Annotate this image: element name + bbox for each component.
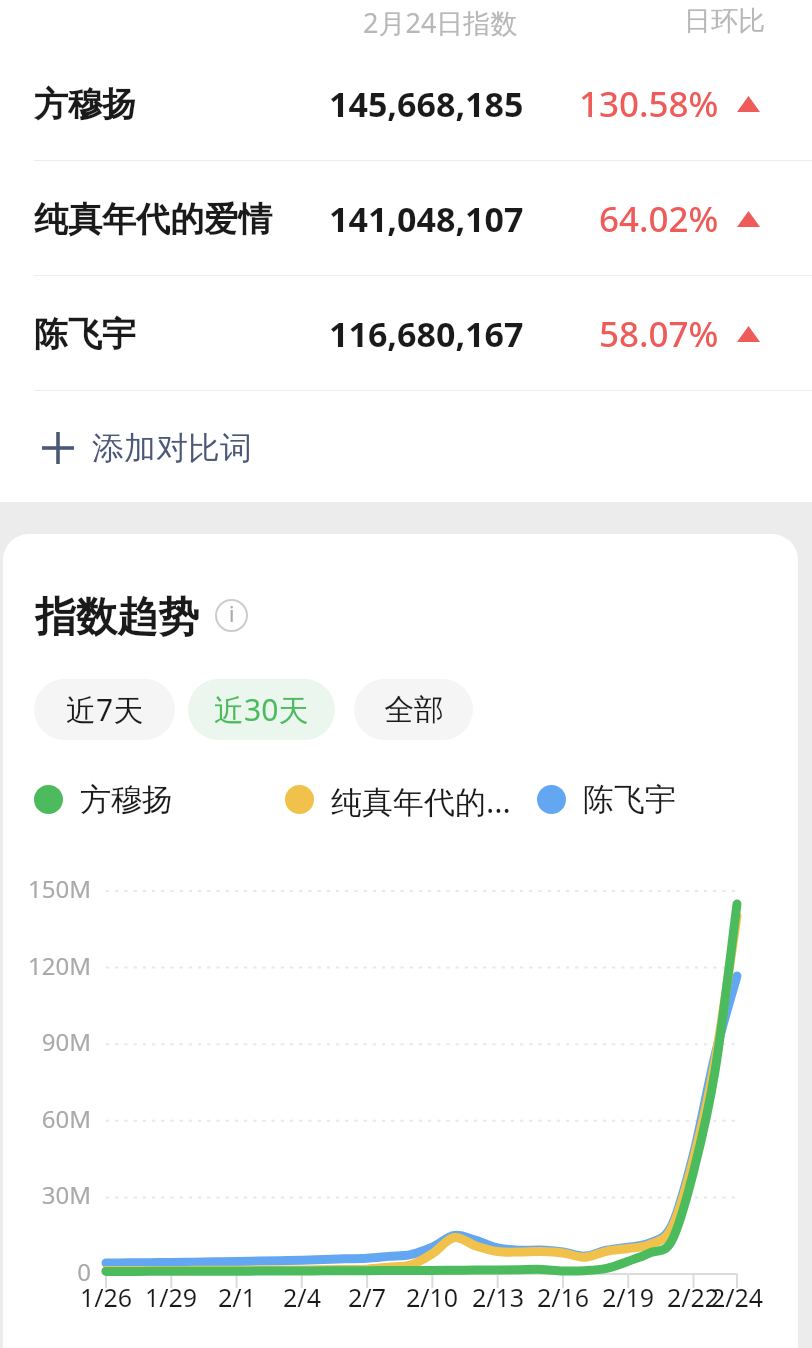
staticText: 141,048,107: [329, 196, 524, 242]
staticText: 添加对比词: [92, 428, 252, 468]
staticText: 58.07%: [599, 310, 719, 358]
staticText: 近30天: [214, 689, 309, 730]
staticText: 日环比: [684, 4, 765, 38]
staticText: 2/13: [453, 1280, 543, 1314]
button[interactable]: 方穆扬: [0, 48, 812, 160]
staticText: 60M: [6, 1102, 91, 1135]
staticText: 130.58%: [579, 80, 719, 128]
staticText: 145,668,185: [329, 81, 524, 127]
button[interactable]: 纯真年代的爱情: [0, 163, 812, 275]
staticText: 全部: [384, 691, 444, 729]
staticText: 30M: [6, 1178, 91, 1211]
staticText: i: [229, 600, 235, 629]
staticText: 1/26: [61, 1280, 151, 1314]
staticText: 方穆扬: [80, 780, 173, 818]
staticText: 方穆扬: [34, 83, 136, 126]
staticText: 纯真年代的爱情: [34, 198, 272, 241]
staticText: 64.02%: [599, 195, 719, 243]
staticText: 2/19: [583, 1280, 673, 1314]
staticText: 2月24日指数: [363, 4, 518, 41]
staticText: 纯真年代的...: [331, 780, 511, 818]
staticText: 2/4: [257, 1280, 347, 1314]
staticText: 2/1: [192, 1280, 282, 1314]
staticText: 陈飞宇: [583, 780, 676, 818]
staticText: 陈飞宇: [34, 313, 136, 356]
button[interactable]: 添加对比词: [0, 393, 812, 502]
button[interactable]: 近7天: [34, 679, 175, 740]
button[interactable]: 全部: [354, 679, 473, 740]
staticText: 2/16: [518, 1280, 608, 1314]
staticText: 2/22: [648, 1280, 738, 1314]
staticText: 116,680,167: [329, 311, 524, 357]
button[interactable]: 陈飞宇: [0, 278, 812, 390]
staticText: 120M: [6, 949, 91, 982]
staticText: 150M: [6, 872, 91, 905]
staticText: 近7天: [66, 689, 144, 730]
staticText: 90M: [6, 1025, 91, 1058]
staticText: 1/29: [126, 1280, 216, 1314]
staticText: 2/7: [322, 1280, 412, 1314]
staticText: 2/24: [692, 1280, 782, 1314]
staticText: 2/10: [387, 1280, 477, 1314]
button[interactable]: 近30天: [188, 679, 335, 740]
staticText: 0: [6, 1255, 91, 1288]
staticText: 指数趋势: [35, 592, 199, 644]
button[interactable]: Info: [215, 599, 248, 632]
